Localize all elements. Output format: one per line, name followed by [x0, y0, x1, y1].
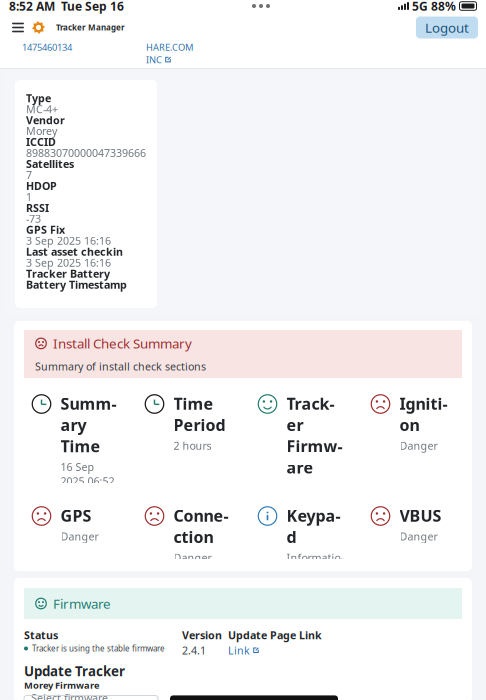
- staticText: 88%: [431, 0, 456, 14]
- staticText: ICCID: [26, 135, 56, 149]
- button[interactable]: Logout: [416, 16, 478, 38]
- staticText: Status: [24, 628, 58, 642]
- staticText: Tue Sep 16: [55, 0, 124, 14]
- staticText: VBUS: [399, 505, 441, 526]
- staticText: Battery Timestamp: [26, 277, 127, 292]
- staticText: Danger: [399, 438, 437, 453]
- staticText: INC: [146, 53, 162, 66]
- staticText: Type: [26, 91, 51, 105]
- staticText: HDOP: [26, 179, 57, 193]
- staticText: Keypad: [286, 505, 340, 547]
- staticText: Tracker Firmware: [286, 393, 342, 478]
- button[interactable]: Update 1 Selected Tracker: [170, 695, 338, 700]
- staticText: 16 Sep 2025 06:52 to 16 Sep 2025 08:52: [60, 460, 114, 516]
- staticText: Summary Time: [60, 393, 116, 457]
- staticText: Satellites: [26, 157, 74, 171]
- staticText: -73: [26, 212, 41, 226]
- staticText: Tracker Manager: [56, 22, 125, 33]
- staticText: Version: [182, 628, 222, 642]
- staticText: Danger: [399, 529, 437, 543]
- staticText: 2 hours: [173, 438, 211, 453]
- staticText: 1475460134: [22, 41, 72, 53]
- staticText: Vendor: [26, 113, 65, 127]
- staticText: Ignition: [399, 393, 447, 435]
- button[interactable]: Tracker Manager: [32, 16, 125, 39]
- staticText: 8:52 AM: [9, 0, 55, 14]
- staticText: RSSI: [26, 201, 49, 215]
- staticText: Tracker Battery: [26, 266, 110, 281]
- staticText: Morey Firmware: [24, 679, 100, 691]
- staticText: Last asset checkin: [26, 244, 123, 259]
- staticText: Morey: [26, 124, 57, 138]
- staticText: HARE.COM: [146, 41, 193, 53]
- staticText: Logout: [425, 19, 469, 36]
- staticText: MC-4+: [26, 102, 58, 116]
- staticText: Select firmware version: [31, 691, 108, 700]
- staticText: 3 Sep 2025 16:16: [26, 255, 111, 270]
- staticText: Information: [286, 550, 343, 579]
- staticText: 89883070000047339666: [26, 146, 146, 160]
- staticText: 5G: [412, 0, 428, 14]
- button[interactable]: Menu: [4, 14, 32, 41]
- staticText: Tracker is using the stable firmware: [32, 643, 165, 654]
- staticText: Update Tracker: [24, 662, 125, 680]
- staticText: Connection: [173, 505, 228, 547]
- staticText: 7: [26, 168, 32, 182]
- staticText: 3 Sep 2025 16:16: [26, 234, 111, 248]
- staticText: GPS: [60, 505, 91, 526]
- staticText: Link: [228, 643, 250, 657]
- staticText: Danger: [173, 550, 211, 565]
- staticText: Update Page Link: [228, 628, 322, 642]
- staticText: 1: [26, 190, 32, 204]
- button[interactable]: Select firmware version: [24, 695, 158, 700]
- staticText: 2.4.1: [182, 643, 206, 657]
- staticText: Install Check Summary: [53, 335, 192, 352]
- staticText: Time Period: [173, 393, 225, 435]
- staticText: GPS Fix: [26, 223, 65, 237]
- staticText: Firmware: [53, 595, 111, 612]
- button[interactable]: Link: [228, 643, 259, 657]
- staticText: Summary of install check sections: [35, 359, 206, 373]
- staticText: Danger: [60, 529, 98, 543]
